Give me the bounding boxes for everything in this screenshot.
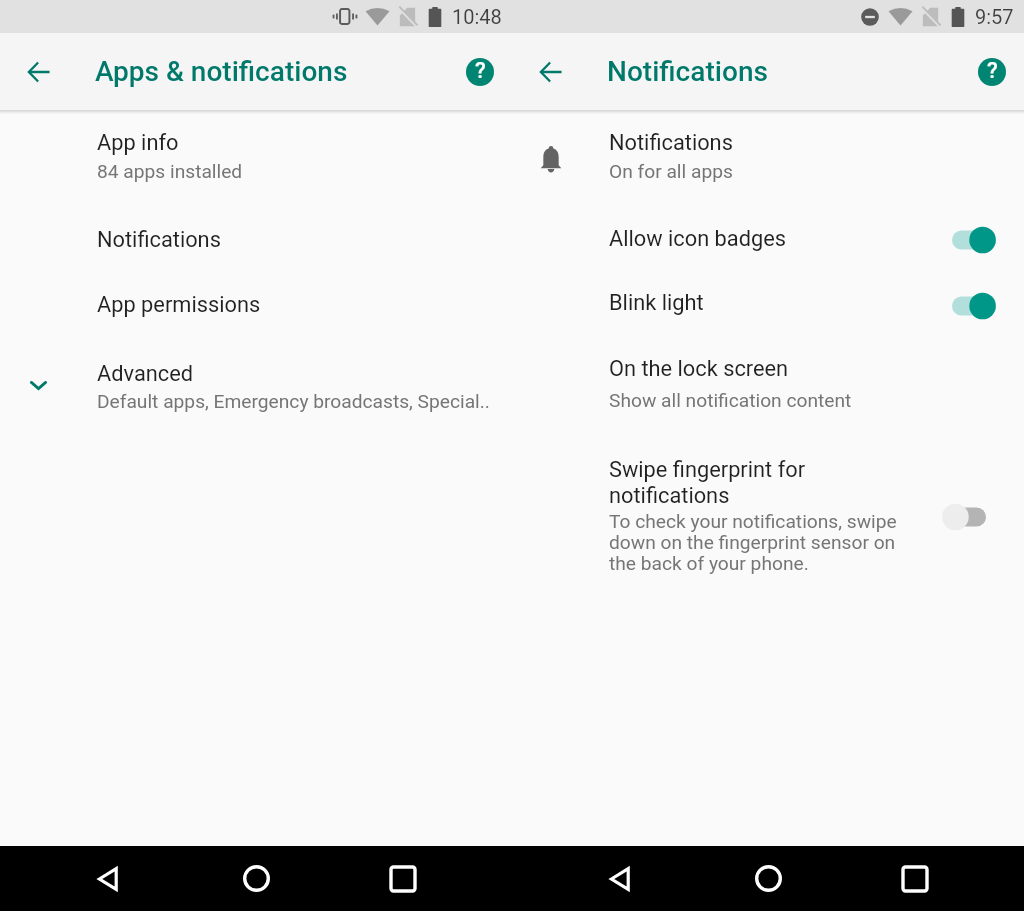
staticText: Show all notification content [609, 389, 852, 412]
button[interactable]: Back [71, 846, 147, 911]
button[interactable]: Allow icon badges, on [942, 223, 1006, 257]
button[interactable]: Home [218, 846, 294, 911]
staticText: 10:48 [452, 5, 502, 28]
staticText: Allow icon badges [609, 226, 787, 252]
staticText: ? [987, 58, 998, 84]
staticText: Blink light [609, 290, 704, 316]
staticText: Advanced [97, 361, 194, 387]
button[interactable]: Swipe fingerprint for notifications, off [932, 500, 996, 534]
button[interactable]: App info [0, 114, 512, 196]
staticText: To check your notifications, swipe down … [609, 510, 909, 574]
staticText: On for all apps [609, 160, 733, 183]
staticText: On the lock screen [609, 356, 789, 382]
staticText: Swipe fingerprint for notifications [609, 457, 821, 509]
staticText: Default apps, Emergency broadcasts, Spec… [97, 390, 490, 413]
button[interactable]: Advanced [0, 328, 512, 414]
button[interactable]: Notifications [0, 196, 512, 262]
button[interactable]: Allow icon badges [512, 196, 1024, 262]
staticText: 9:57 [975, 5, 1014, 28]
staticText: 84 apps installed [97, 160, 243, 183]
button[interactable]: Back [583, 846, 659, 911]
button[interactable]: Navigate up [529, 50, 573, 94]
button[interactable]: Recent apps [877, 846, 953, 911]
button[interactable]: Navigate up [17, 50, 61, 94]
button[interactable]: Recent apps [365, 846, 441, 911]
staticText: Notifications [607, 55, 768, 88]
button[interactable]: Help [970, 50, 1014, 94]
button[interactable]: App permissions [0, 262, 512, 328]
staticText: App permissions [97, 292, 261, 318]
button[interactable]: Blink light, on [942, 289, 1006, 323]
staticText: ? [475, 58, 486, 84]
staticText: Notifications [97, 227, 221, 253]
button[interactable]: Notifications [512, 114, 1024, 196]
button[interactable]: Home [730, 846, 806, 911]
button[interactable]: Blink light [512, 262, 1024, 328]
staticText: Notifications [609, 130, 733, 156]
button[interactable]: Swipe fingerprint for notifications [512, 414, 1024, 560]
staticText: Apps & notifications [95, 55, 348, 88]
button[interactable]: On the lock screen [512, 328, 1024, 414]
staticText: App info [97, 130, 179, 156]
button[interactable]: Help [458, 50, 502, 94]
